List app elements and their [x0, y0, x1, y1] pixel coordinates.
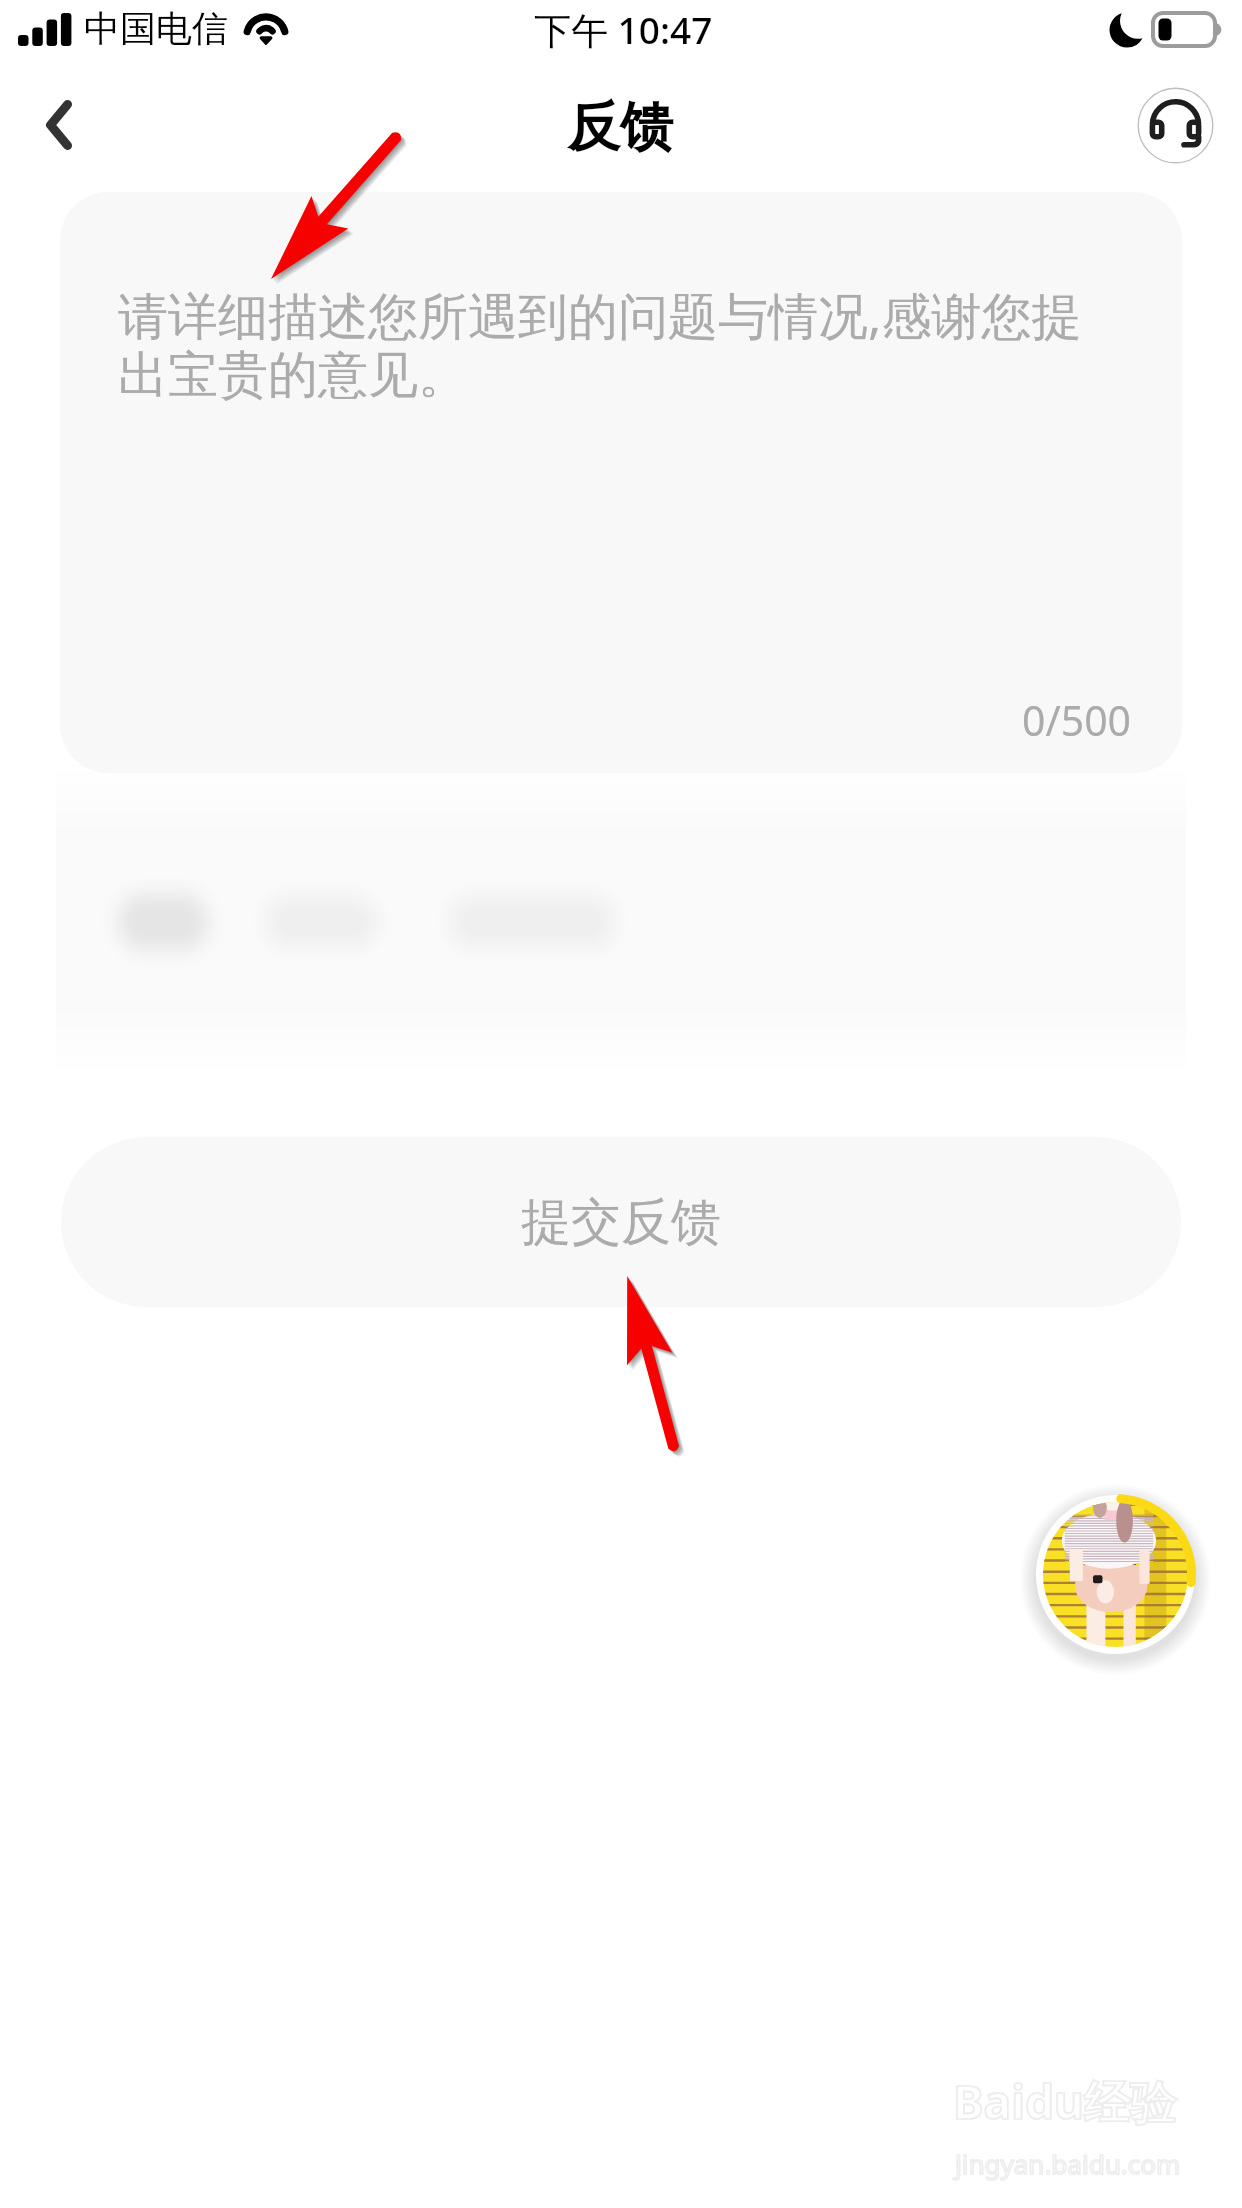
- staticText: 请详细描述您所遇到的问题与情况,感谢您提 出宝贵的意见。: [118, 281, 1082, 407]
- button[interactable]: 提交反馈: [61, 1137, 1181, 1307]
- staticText: 0/500: [1022, 692, 1132, 748]
- button[interactable]: Customer service: [1130, 80, 1221, 171]
- staticText: 反馈: [567, 94, 673, 161]
- button[interactable]: Back: [12, 78, 106, 172]
- button[interactable]: Assistant: [1020, 1479, 1211, 1670]
- staticText: Baidu经验: [953, 2070, 1176, 2133]
- staticText: jingyan.baidu.com: [955, 2146, 1181, 2181]
- staticText: 提交反馈: [521, 1191, 721, 1254]
- staticText: 下午 10:47: [534, 4, 713, 55]
- staticText: 中国电信: [84, 6, 228, 51]
- button[interactable]: 请详细描述您所遇到的问题与情况,感谢您提 出宝贵的意见。: [60, 192, 1182, 773]
